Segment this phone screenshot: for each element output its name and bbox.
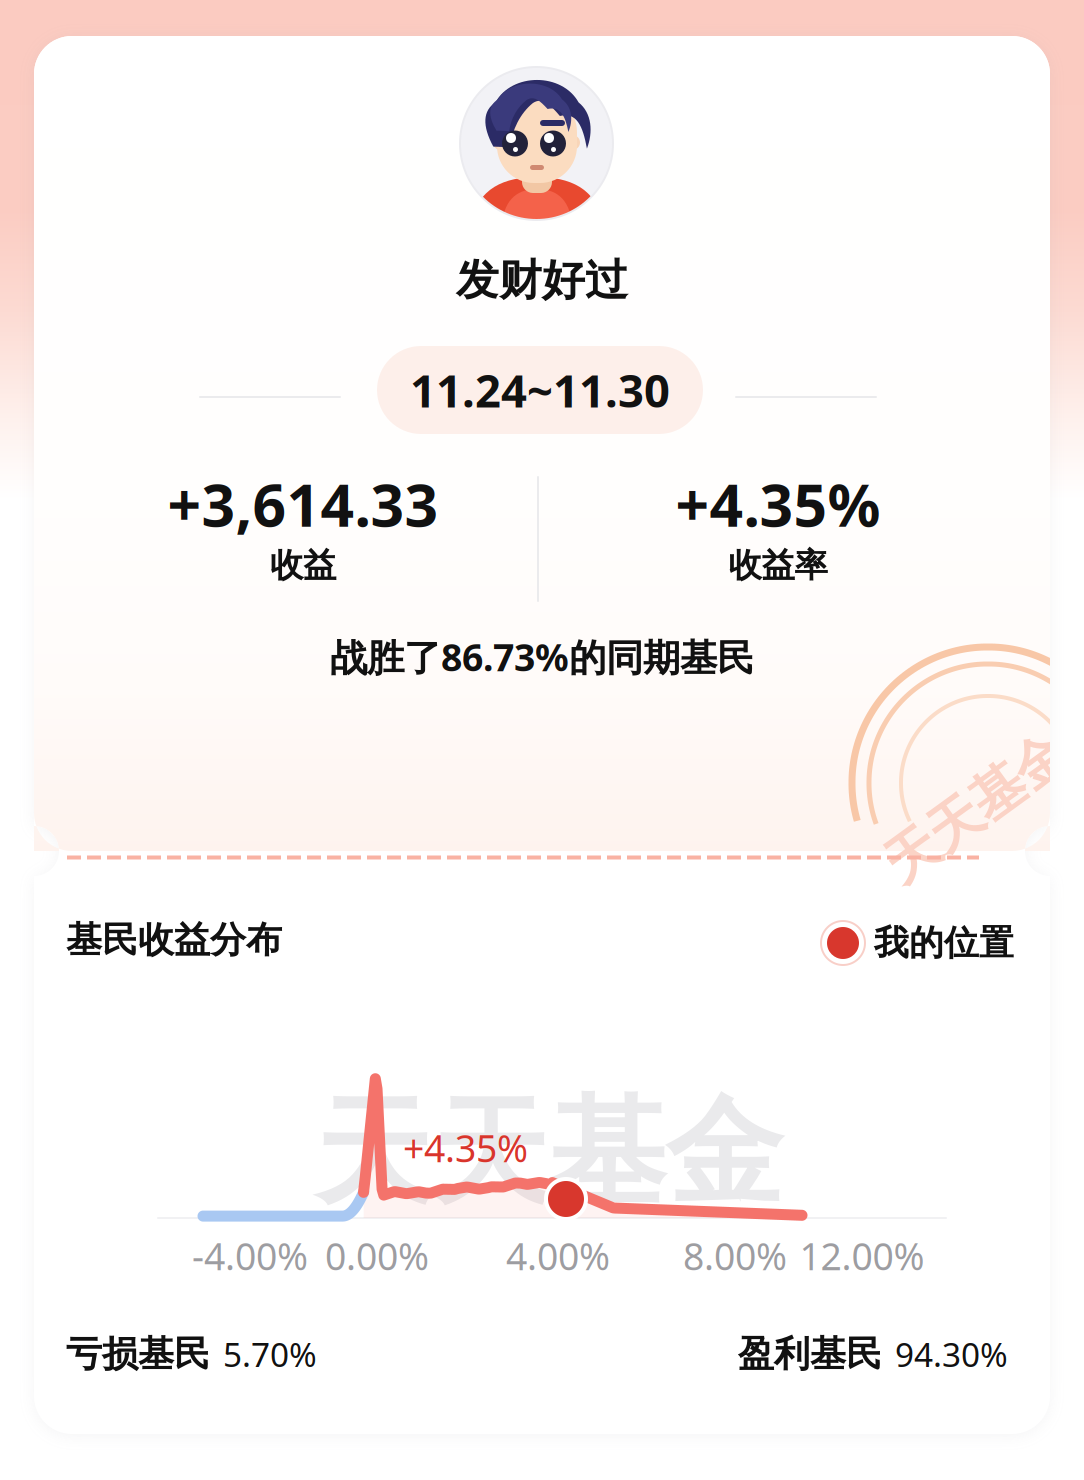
button[interactable]: Profile photo <box>460 67 613 220</box>
staticText: 94.30% <box>895 1332 1008 1376</box>
staticText: 战胜了86.73%的同期基民 <box>330 632 754 682</box>
staticText: 收益率 <box>728 545 827 586</box>
staticText: 发财好过 <box>456 254 628 306</box>
staticText: 天天基金 <box>314 1081 782 1225</box>
button[interactable]: 我的位置 <box>821 921 1014 965</box>
staticText: -4.00% <box>192 1231 308 1281</box>
staticText: +4.35% <box>403 1123 528 1173</box>
staticText: 亏损基民 <box>66 1332 210 1376</box>
staticText: 8.00% <box>683 1231 787 1281</box>
staticText: 11.24~11.30 <box>410 360 670 420</box>
staticText: +4.35% <box>675 465 880 543</box>
staticText: 4.00% <box>506 1231 610 1281</box>
staticText: 5.70% <box>223 1332 317 1376</box>
staticText: 12.00% <box>799 1231 924 1281</box>
staticText: 盈利基民 <box>738 1332 882 1376</box>
staticText: 天天基金 <box>870 775 1082 841</box>
staticText: +3,614.33 <box>167 465 438 543</box>
staticText: 我的位置 <box>874 922 1014 964</box>
staticText: 0.00% <box>325 1231 429 1281</box>
staticText: 基民收益分布 <box>66 918 282 962</box>
staticText: 收益 <box>270 545 336 586</box>
button[interactable]: 11.24~11.30 <box>377 346 703 434</box>
